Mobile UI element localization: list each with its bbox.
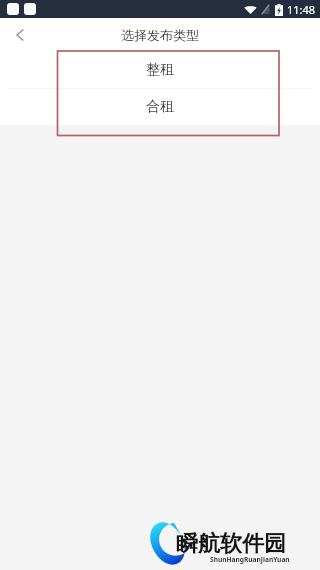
staticText: 整租 <box>146 61 174 79</box>
staticText: 合租 <box>146 98 174 116</box>
staticText: 11:48 <box>287 2 316 17</box>
staticText: ShunHangRuanJianYuan <box>210 555 290 564</box>
staticText: 瞬航软件园 <box>176 530 286 558</box>
button[interactable]: Back <box>3 18 37 52</box>
staticText: 选择发布类型 <box>121 27 199 43</box>
button[interactable]: 整租 <box>0 52 320 88</box>
button[interactable]: 合租 <box>0 89 320 125</box>
